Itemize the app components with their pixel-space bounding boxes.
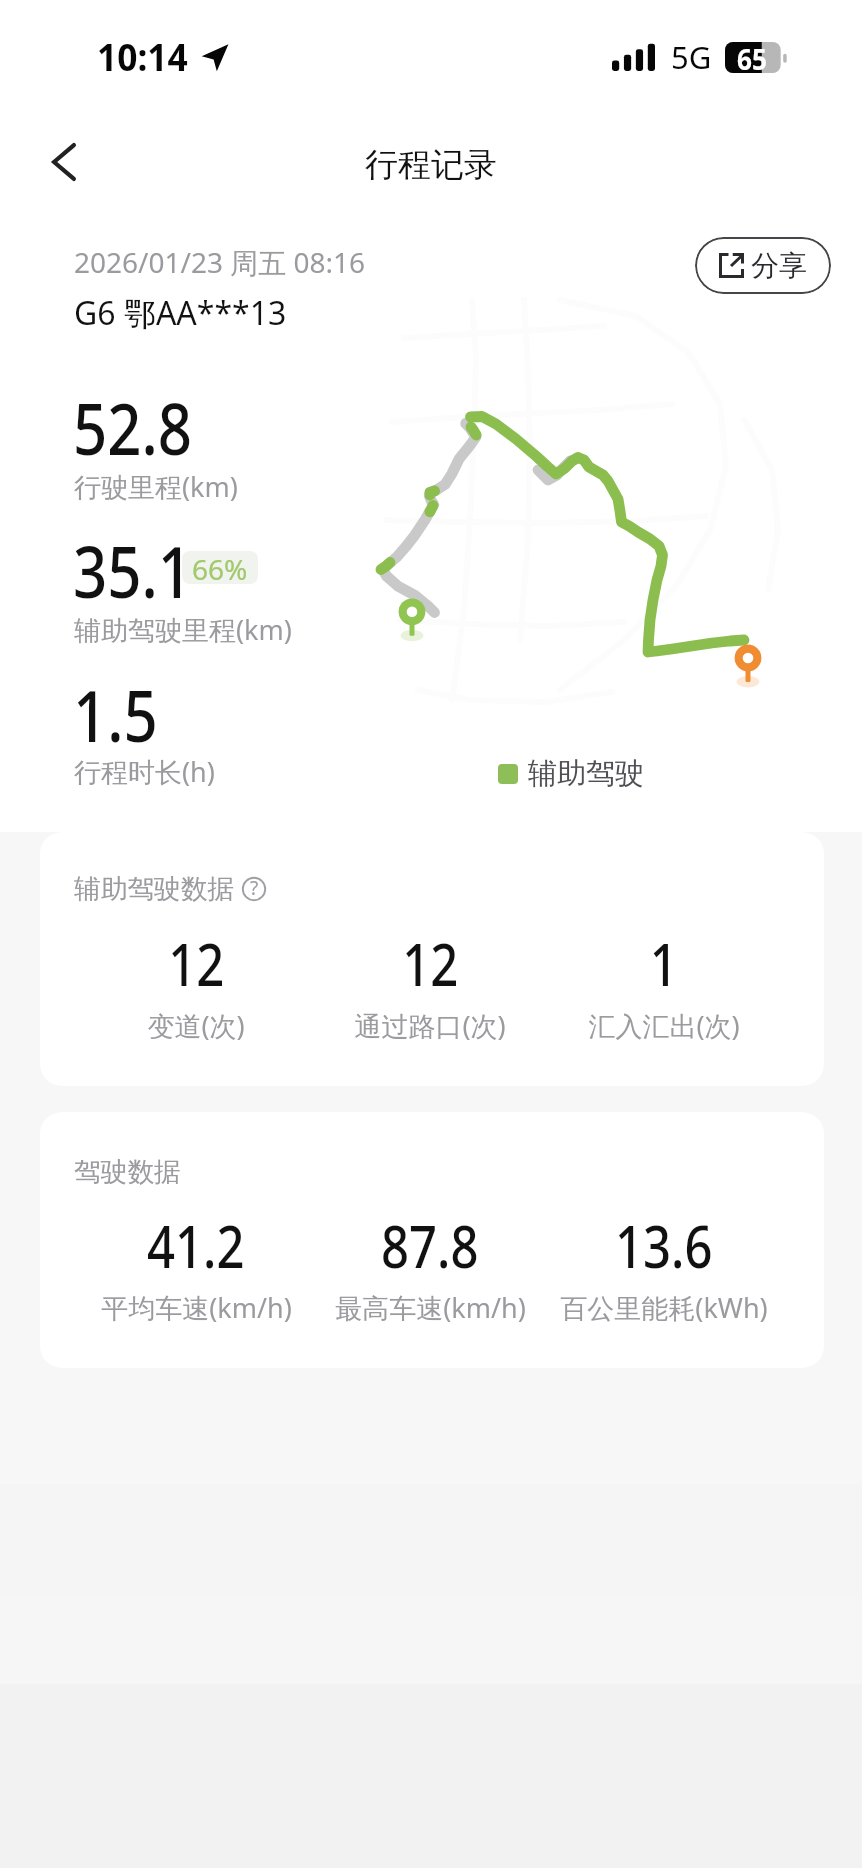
button[interactable]: Back [24,122,104,202]
staticText: 1 [650,924,678,1003]
staticText: 41.2 [147,1206,245,1285]
staticText: 辅助驾驶 [528,755,644,792]
button[interactable]: Trip route map [350,300,850,730]
staticText: 行程记录 [365,144,497,186]
staticText: 13.6 [615,1206,713,1285]
staticText: ? [250,875,259,901]
staticText: 66% [192,551,248,583]
staticText: 1.5 [73,667,158,762]
staticText: 87.8 [381,1206,479,1285]
button[interactable]: Info [241,876,267,902]
staticText: 最高车速(km/h) [335,1289,526,1326]
button[interactable]: 分享 [695,237,831,294]
staticText: 分享 [751,248,807,283]
staticText: 12 [168,924,225,1003]
staticText: 辅助驾驶数据 [74,872,235,906]
staticText: 百公里能耗(kWh) [560,1289,768,1326]
staticText: 65 [737,39,768,70]
staticText: 汇入汇出(次) [588,1007,740,1044]
staticText: G6 鄂AA***13 [74,291,287,335]
staticText: 通过路口(次) [354,1007,506,1044]
staticText: 行驶里程(km) [74,468,238,505]
staticText: 变道(次) [147,1007,245,1044]
staticText: 辅助驾驶里程(km) [74,611,292,648]
staticText: 52.8 [73,380,193,475]
staticText: 5G [671,36,712,78]
staticText: 行程时长(h) [74,753,215,790]
staticText: 平均车速(km/h) [101,1289,292,1326]
staticText: 35.1 [73,523,193,618]
staticText: 驾驶数据 [74,1155,181,1189]
staticText: 10:14 [97,31,189,81]
staticText: 12 [402,924,459,1003]
staticText: 2026/01/23 周五 08:16 [74,243,366,281]
